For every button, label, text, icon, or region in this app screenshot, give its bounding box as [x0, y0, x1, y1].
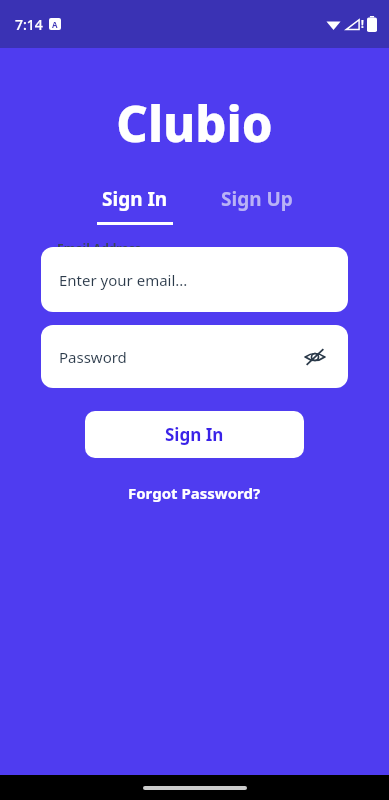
button[interactable]: Sign Up — [207, 184, 307, 214]
button[interactable]: Enter your email... — [41, 247, 348, 312]
staticText: Password — [59, 347, 127, 367]
button[interactable]: Sign In — [85, 411, 304, 458]
staticText: Sign In — [165, 423, 224, 446]
staticText: Clubio — [116, 90, 273, 157]
staticText: 7:14 — [15, 15, 43, 34]
staticText: Enter your email... — [59, 270, 188, 290]
staticText: Email Address — [57, 240, 141, 256]
button[interactable]: Password — [41, 325, 348, 388]
staticText: Forgot Password? — [128, 483, 261, 503]
staticText: Sign In — [102, 186, 168, 212]
staticText: ! — [361, 17, 364, 31]
button[interactable]: Show password — [300, 342, 330, 372]
button[interactable]: Forgot Password? — [118, 479, 271, 507]
button[interactable]: Sign In — [83, 184, 187, 227]
staticText: A — [52, 19, 58, 30]
staticText: Sign Up — [221, 186, 293, 212]
